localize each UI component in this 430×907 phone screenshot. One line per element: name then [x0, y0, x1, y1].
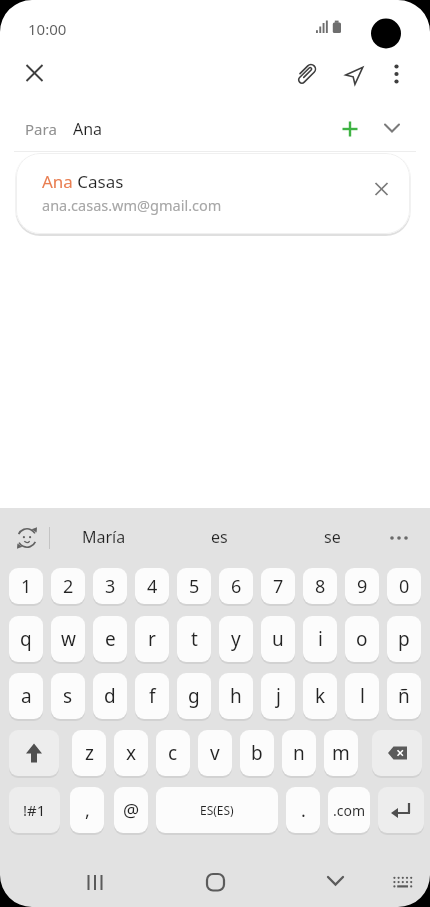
staticText: m [332, 740, 350, 766]
button[interactable]: .com [328, 787, 370, 833]
staticText: Ana [73, 118, 103, 140]
button[interactable]: h [219, 673, 253, 719]
staticText: 10:00 [28, 19, 67, 39]
staticText: j [276, 683, 281, 709]
staticText: María [82, 526, 126, 548]
staticText: d [104, 683, 116, 709]
staticText: , [85, 798, 90, 823]
staticText: s [63, 683, 73, 709]
button[interactable] [366, 174, 397, 205]
staticText: o [356, 626, 368, 652]
button[interactable]: Ana Casas [16, 153, 410, 234]
button[interactable]: y [219, 616, 253, 662]
button[interactable]: q [9, 616, 43, 662]
button[interactable]: ñ [387, 673, 421, 719]
button[interactable] [9, 730, 59, 776]
staticText: Para [25, 119, 57, 139]
staticText: 9 [357, 574, 368, 599]
button[interactable] [390, 868, 416, 894]
staticText: q [20, 626, 32, 652]
button[interactable]: se [302, 514, 362, 560]
staticText: 2 [63, 574, 74, 599]
button[interactable]: z [72, 730, 106, 776]
button[interactable] [384, 524, 414, 552]
button[interactable]: j [261, 673, 295, 719]
button[interactable]: 7 [261, 568, 295, 604]
staticText: w [61, 626, 76, 652]
staticText: 5 [189, 574, 200, 599]
button[interactable]: 0 [387, 568, 421, 604]
button[interactable]: s [51, 673, 85, 719]
staticText: ñ [398, 683, 410, 709]
button[interactable]: 4 [135, 568, 169, 604]
button[interactable] [335, 114, 365, 144]
button[interactable]: 3 [93, 568, 127, 604]
staticText: v [210, 740, 220, 766]
button[interactable] [378, 787, 424, 833]
staticText: y [231, 626, 241, 652]
staticText: n [293, 740, 305, 766]
button[interactable]: n [282, 730, 316, 776]
staticText: 0 [399, 574, 410, 599]
button[interactable]: !#1 [9, 787, 60, 833]
button[interactable]: @ [114, 787, 148, 833]
button[interactable]: a [9, 673, 43, 719]
button[interactable]: p [387, 616, 421, 662]
button[interactable] [340, 58, 372, 90]
staticText: g [188, 683, 200, 709]
button[interactable] [383, 58, 411, 90]
button[interactable]: l [345, 673, 379, 719]
button[interactable]: o [345, 616, 379, 662]
button[interactable]: x [114, 730, 148, 776]
button[interactable]: g [177, 673, 211, 719]
staticText: p [398, 626, 410, 652]
staticText: r [148, 626, 156, 652]
button[interactable]: 8 [303, 568, 337, 604]
button[interactable]: m [324, 730, 358, 776]
button[interactable] [372, 730, 422, 776]
staticText: ana.casas.wm@gmail.com [42, 195, 222, 215]
button[interactable]: t [177, 616, 211, 662]
staticText: z [85, 740, 94, 766]
button[interactable]: es [189, 514, 249, 560]
button[interactable] [10, 521, 44, 555]
button[interactable]: u [261, 616, 295, 662]
button[interactable]: 2 [51, 568, 85, 604]
staticText: e [105, 626, 116, 652]
staticText: b [251, 740, 263, 766]
staticText: 7 [273, 574, 284, 599]
staticText: es [211, 526, 228, 548]
staticText: x [126, 740, 137, 766]
staticText: @ [123, 798, 140, 823]
button[interactable]: . [286, 787, 320, 833]
button[interactable]: c [156, 730, 190, 776]
button[interactable] [290, 58, 322, 90]
button[interactable] [18, 57, 51, 90]
button[interactable]: 6 [219, 568, 253, 604]
button[interactable]: i [303, 616, 337, 662]
button[interactable]: w [51, 616, 85, 662]
button[interactable]: d [93, 673, 127, 719]
button[interactable] [377, 113, 407, 143]
button[interactable]: 5 [177, 568, 211, 604]
button[interactable]: e [93, 616, 127, 662]
button[interactable]: v [198, 730, 232, 776]
button[interactable]: f [135, 673, 169, 719]
button[interactable] [199, 866, 233, 898]
staticText: se [324, 526, 341, 548]
staticText: .com [333, 801, 366, 820]
staticText: 1 [21, 574, 32, 599]
button[interactable]: b [240, 730, 274, 776]
button[interactable]: k [303, 673, 337, 719]
button[interactable]: María [60, 514, 148, 560]
button[interactable] [78, 866, 112, 898]
button[interactable]: 9 [345, 568, 379, 604]
button[interactable]: ES(ES) [156, 787, 278, 833]
button[interactable]: r [135, 616, 169, 662]
staticText: a [21, 683, 32, 709]
button[interactable]: 1 [9, 568, 43, 604]
button[interactable]: , [70, 787, 104, 833]
staticText: l [360, 683, 365, 709]
staticText: h [230, 683, 242, 709]
button[interactable] [320, 866, 352, 898]
